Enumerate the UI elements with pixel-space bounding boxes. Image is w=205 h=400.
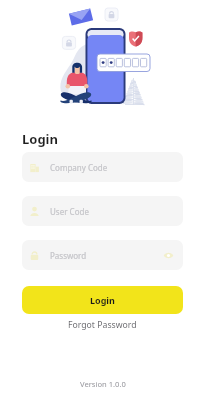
staticText: Login (22, 130, 58, 148)
button[interactable]: Login (22, 286, 183, 314)
button[interactable]: Show password (163, 250, 174, 261)
button[interactable]: Company Code (22, 152, 183, 182)
staticText: Version 1.0.0 (80, 379, 126, 389)
button[interactable]: Password (22, 240, 183, 270)
button[interactable]: User Code (22, 196, 183, 226)
staticText: Company Code (50, 162, 108, 173)
staticText: User Code (50, 206, 89, 217)
staticText: Login (90, 294, 115, 306)
staticText: Password (50, 250, 87, 261)
button[interactable]: Forgot Password (68, 319, 137, 331)
